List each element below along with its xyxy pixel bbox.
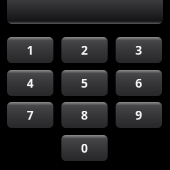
staticText: 5 [81,75,88,91]
button[interactable]: 9 [116,102,162,128]
button[interactable]: 0 [61,135,108,161]
staticText: 6 [135,75,142,91]
button[interactable]: 2 [61,37,108,63]
staticText: 0 [81,140,88,156]
button[interactable]: 7 [7,102,53,128]
button[interactable]: 4 [7,70,53,96]
button[interactable]: 5 [61,70,108,96]
button[interactable]: 1 [7,37,53,63]
button[interactable]: 8 [61,102,108,128]
staticText: 2 [81,42,88,58]
button[interactable]: 6 [116,70,162,96]
staticText: 4 [27,75,34,91]
staticText: 3 [135,42,142,58]
staticText: 8 [81,107,88,123]
staticText: 9 [135,107,142,123]
staticText: 7 [27,107,34,123]
button[interactable]: 3 [116,37,162,63]
staticText: 1 [27,42,34,58]
